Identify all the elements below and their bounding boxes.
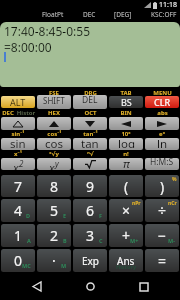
button[interactable]: ÷ [145,199,179,222]
button[interactable]: tan [73,138,107,150]
button[interactable]: Up [37,117,71,130]
button[interactable]: 7 [1,175,35,197]
button[interactable]: Back [20,273,54,300]
button[interactable]: 2 [37,224,71,247]
button[interactable]: Exp [73,249,107,272]
button[interactable]: 17:40-8:45-0:55 [0,22,180,87]
staticText: sin⁻¹ [11,130,25,138]
button[interactable]: 9 [73,175,107,197]
staticText: cos [45,138,63,148]
staticText: H:M:S [150,158,174,168]
button[interactable]: Home [73,273,107,300]
button[interactable]: log [109,138,143,150]
staticText: 17:40-8:45-0:55 [4,23,91,39]
button[interactable]: Down [73,117,107,130]
staticText: Exp [82,254,99,268]
staticText: ÷ [158,201,167,220]
staticText: History [16,109,36,117]
button[interactable]: 1 [1,224,35,247]
button[interactable]: Ans [109,249,143,272]
staticText: DEC [83,10,96,19]
button[interactable]: − [145,224,179,247]
staticText: 10ˣ [121,130,131,138]
staticText: abs [157,109,168,117]
button[interactable]: 6 [73,199,107,222]
button[interactable]: 5 [37,199,71,222]
staticText: nCr [168,200,177,207]
staticText: · [52,251,56,270]
staticText: Ans [117,254,135,268]
staticText: D [26,212,31,219]
button[interactable]: Recents [127,273,161,300]
staticText: 2 [19,158,24,169]
staticText: HEX [48,109,60,117]
staticText: 3 [86,226,95,245]
staticText: FloatPt [42,10,64,19]
staticText: log [118,138,135,148]
staticText: BS [121,96,132,108]
staticText: + [122,226,131,245]
button[interactable]: sin [1,138,35,150]
staticText: tan⁻¹ [83,130,98,138]
staticText: A [27,237,31,244]
button[interactable]: 0 [1,249,35,272]
button[interactable]: Right [145,117,179,130]
staticText: x⁻¹ [14,150,22,158]
button[interactable]: ) [145,175,179,197]
button[interactable]: 8 [37,175,71,197]
button[interactable]: + [109,224,143,247]
button[interactable]: SHIFT [37,95,71,109]
button[interactable]: H:M:S [145,158,179,170]
staticText: TAB [120,89,132,95]
staticText: History [116,263,137,270]
button[interactable]: x [37,158,71,170]
staticText: 11:18 [159,0,177,10]
button[interactable]: CLR [145,96,179,108]
staticText: cos⁻¹ [47,130,62,138]
button[interactable]: · [37,249,71,272]
button[interactable]: cos [37,138,71,150]
staticText: 4 [14,201,23,220]
staticText: tan [81,138,99,148]
staticText: ⁿ√ [87,150,94,158]
button[interactable]: x [1,158,35,170]
staticText: [DEG] [114,10,132,19]
staticText: 7 [14,177,23,196]
staticText: ) [160,177,165,196]
staticText: OCT [84,109,97,117]
staticText: π [123,158,130,168]
staticText: 9 [86,177,95,196]
staticText: DEC [2,109,14,117]
button[interactable]: Up [1,117,35,130]
staticText: DRG [84,89,97,95]
button[interactable]: Square root [73,158,107,170]
button[interactable]: π [109,158,143,170]
button[interactable]: ( [109,175,143,197]
button[interactable]: Left [109,117,143,130]
button[interactable]: ALT [1,96,35,108]
staticText: E [63,212,67,219]
staticText: CLR [154,96,171,108]
button[interactable]: DEL [73,95,107,109]
staticText: ( [124,177,129,196]
staticText: FSE [49,89,59,95]
button[interactable]: = [145,249,179,272]
staticText: F [99,212,103,219]
staticText: y [55,158,59,169]
staticText: 2 [50,226,59,245]
button[interactable]: BS [109,96,143,108]
button[interactable]: 4 [1,199,35,222]
staticText: 6 [86,201,95,220]
staticText: − [158,226,167,245]
button[interactable]: × [109,199,143,222]
staticText: ln [157,138,168,148]
staticText: MENU [153,89,172,95]
button[interactable]: ln [145,138,179,150]
staticText: C [99,237,103,244]
staticText: sin [10,138,26,148]
staticText: ˣ√y [49,150,59,158]
staticText: =8:00:00 [4,39,52,55]
staticText: x [13,160,19,170]
button[interactable]: 3 [73,224,107,247]
staticText: nPr [132,200,141,207]
